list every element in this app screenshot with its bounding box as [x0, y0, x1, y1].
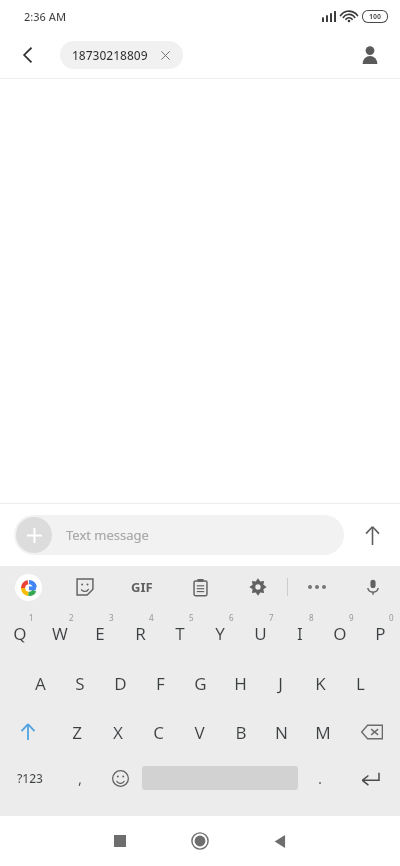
button[interactable]: C [138, 710, 179, 754]
staticText: GIF [131, 578, 153, 596]
button[interactable]: Y [200, 610, 240, 656]
staticText: Y [215, 622, 225, 645]
button[interactable]: O [320, 610, 360, 656]
staticText: L [356, 672, 365, 695]
staticText: 18730218809 [72, 47, 148, 63]
button[interactable]: I [280, 610, 320, 656]
button[interactable]: M [302, 710, 343, 754]
staticText: V [194, 721, 205, 744]
staticText: 2 [69, 612, 74, 623]
staticText: J [278, 672, 283, 695]
staticText: M [315, 721, 331, 744]
button[interactable]: , [60, 758, 100, 798]
button[interactable]: T [160, 610, 200, 656]
other: Remove recipient [160, 50, 171, 61]
staticText: ?123 [17, 770, 43, 786]
button[interactable]: H [220, 660, 260, 706]
button[interactable]: Back [10, 37, 46, 73]
staticText: C [153, 721, 164, 744]
button[interactable]: Attach [14, 515, 344, 555]
staticText: R [135, 622, 146, 645]
button[interactable]: Attach [16, 517, 52, 553]
button[interactable]: Back [240, 816, 320, 866]
staticText: Text message [66, 526, 149, 544]
staticText: K [315, 672, 326, 695]
staticText: W [52, 622, 68, 645]
staticText: T [175, 622, 185, 645]
staticText: 3 [109, 612, 114, 623]
button[interactable]: Enter [340, 758, 400, 798]
button[interactable]: K [300, 660, 340, 706]
button[interactable]: W [40, 610, 80, 656]
staticText: X [113, 721, 123, 744]
button[interactable]: V [179, 710, 220, 754]
staticText: E [95, 622, 105, 645]
staticText: O [333, 622, 347, 645]
button[interactable]: Stickers [56, 566, 113, 608]
staticText: , [78, 768, 83, 788]
button[interactable]: Shift [0, 710, 56, 754]
button[interactable]: Home [160, 816, 240, 866]
button[interactable]: A [20, 660, 60, 706]
staticText: U [254, 622, 267, 645]
button[interactable]: Google [0, 566, 56, 608]
staticText: 6 [229, 612, 234, 623]
button[interactable]: 18730218809 [60, 41, 183, 69]
staticText: 100 [369, 12, 382, 22]
staticText: 2:36 AM [24, 9, 67, 24]
staticText: G [194, 672, 207, 695]
button[interactable]: Recents [80, 816, 160, 866]
button[interactable]: . [300, 758, 340, 798]
staticText: 7 [269, 612, 274, 623]
button[interactable]: G [180, 660, 220, 706]
button[interactable]: E [80, 610, 120, 656]
button[interactable]: Clipboard [171, 566, 229, 608]
button[interactable]: R [120, 610, 160, 656]
button[interactable]: Voice input [346, 566, 400, 608]
button[interactable]: Contacts [350, 35, 390, 75]
staticText: S [75, 672, 85, 695]
staticText: N [275, 721, 288, 744]
button[interactable]: X [97, 710, 138, 754]
button[interactable]: More options [288, 566, 346, 608]
button[interactable]: N [261, 710, 302, 754]
staticText: 9 [349, 612, 354, 623]
button[interactable]: GIF [113, 566, 171, 608]
button[interactable]: Settings [229, 566, 287, 608]
staticText: D [114, 672, 127, 695]
button[interactable]: D [100, 660, 140, 706]
button[interactable]: S [60, 660, 100, 706]
button[interactable]: Emoji [100, 758, 140, 798]
button[interactable]: Q [0, 610, 40, 656]
staticText: 4 [149, 612, 154, 623]
button[interactable]: ?123 [0, 758, 60, 798]
staticText: P [375, 622, 386, 645]
staticText: I [297, 622, 303, 645]
staticText: H [234, 672, 247, 695]
staticText: Z [72, 721, 82, 744]
button[interactable]: Backspace [343, 710, 400, 754]
staticText: 8 [309, 612, 314, 623]
staticText: B [235, 721, 247, 744]
button[interactable]: Z [56, 710, 97, 754]
staticText: 5 [189, 612, 194, 623]
staticText: Q [13, 622, 27, 645]
button[interactable]: J [260, 660, 300, 706]
button[interactable]: B [220, 710, 261, 754]
staticText: . [318, 768, 323, 788]
button[interactable]: Send [344, 511, 400, 559]
staticText: A [35, 672, 46, 695]
staticText: 1 [29, 612, 34, 623]
staticText: F [156, 672, 165, 695]
button[interactable]: P [360, 610, 400, 656]
button[interactable]: U [240, 610, 280, 656]
button[interactable]: L [340, 660, 380, 706]
staticText: 0 [389, 612, 394, 623]
button[interactable]: F [140, 660, 180, 706]
